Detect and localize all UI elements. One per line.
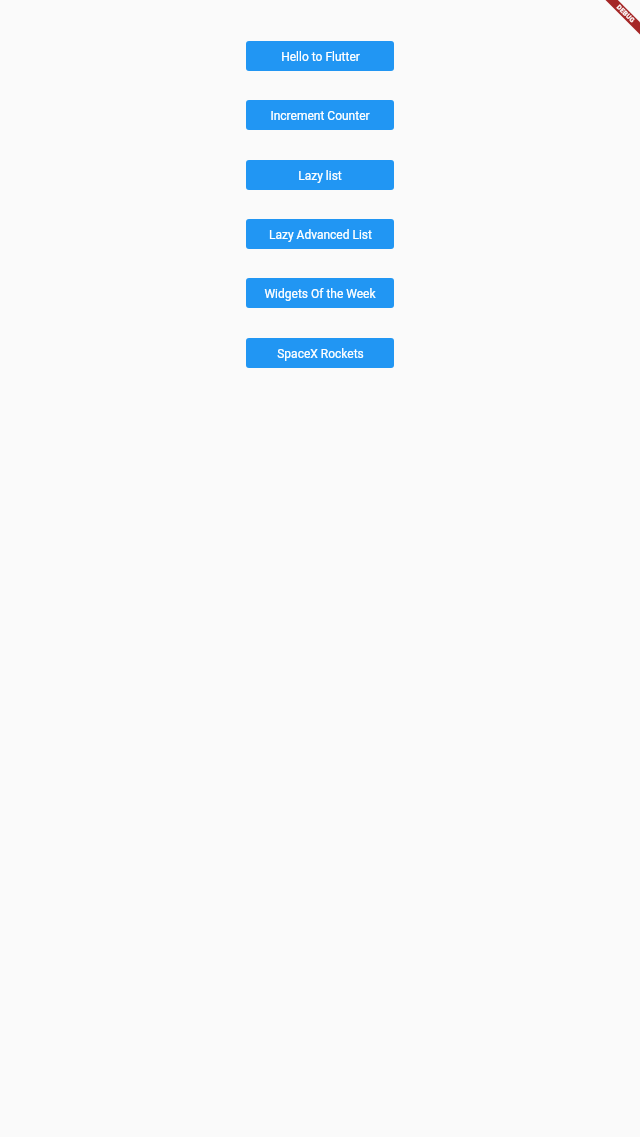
staticText: Lazy list	[298, 169, 342, 183]
button[interactable]: Increment Counter	[246, 100, 394, 130]
other: DEBUG banner	[580, 0, 640, 60]
staticText: SpaceX Rockets	[277, 347, 364, 361]
button[interactable]: Lazy Advanced List	[246, 219, 394, 249]
button[interactable]: SpaceX Rockets	[246, 338, 394, 368]
staticText: Lazy Advanced List	[269, 228, 372, 242]
staticText: Increment Counter	[270, 109, 370, 123]
button[interactable]: Lazy list	[246, 160, 394, 190]
staticText: Widgets Of the Week	[264, 287, 376, 301]
button[interactable]: Hello to Flutter	[246, 41, 394, 71]
button[interactable]: Widgets Of the Week	[246, 278, 394, 308]
staticText: Hello to Flutter	[281, 50, 360, 64]
